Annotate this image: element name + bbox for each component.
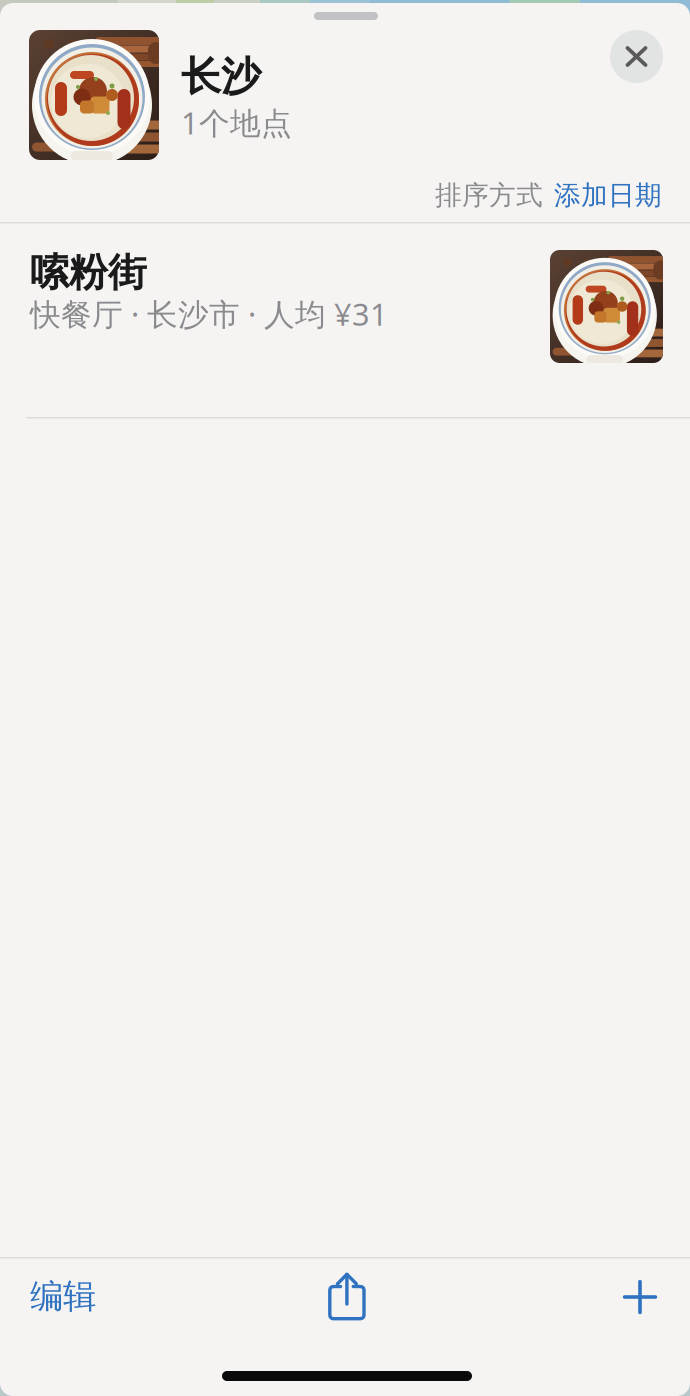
button[interactable]: 编辑 (0, 1256, 124, 1337)
staticText: 嗦粉街 (30, 249, 147, 296)
staticText: 添加日期 (554, 179, 662, 212)
staticText: 1个地点 (181, 102, 292, 143)
staticText: 排序方式 (435, 179, 543, 212)
staticText: 长沙 (181, 52, 261, 101)
staticText: 快餐厅 · 长沙市 · 人均 ¥31 (30, 293, 388, 334)
staticText: 编辑 (30, 1276, 96, 1317)
button[interactable]: Close (610, 30, 663, 83)
button[interactable]: Share (310, 1254, 384, 1338)
button[interactable]: Add Place (605, 1262, 675, 1332)
button[interactable]: 嗦粉街 (0, 224, 690, 419)
button[interactable]: 排序方式 (421, 165, 690, 226)
